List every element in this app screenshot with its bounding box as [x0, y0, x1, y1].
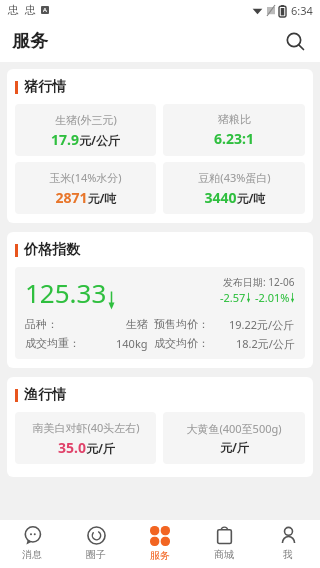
staticText: 成交均重： — [25, 336, 80, 350]
button[interactable]: Search — [280, 26, 310, 56]
staticText: 玉米(14%水分) — [49, 170, 122, 185]
staticText: 140kg — [116, 336, 148, 351]
staticText: 商城 — [214, 548, 234, 561]
button[interactable]: 我 — [256, 520, 320, 568]
staticText: 大黄鱼(400至500g) — [186, 421, 282, 436]
staticText: 成交均价： — [154, 336, 209, 350]
staticText: 6.23:1 — [214, 129, 254, 148]
staticText: 35.0元/斤 — [58, 438, 115, 457]
staticText: 生猪(外三元) — [55, 112, 117, 127]
button[interactable]: 南美白对虾(40头左右) — [15, 412, 156, 464]
staticText: 南美白对虾(40头左右) — [32, 420, 140, 435]
staticText: -2.01% — [255, 290, 290, 305]
button[interactable]: 服务 — [128, 520, 192, 568]
button[interactable]: 豆粕(43%蛋白) — [163, 162, 305, 214]
staticText: A — [43, 6, 47, 14]
staticText: 预售均价： — [154, 317, 209, 331]
staticText: -2.57 — [220, 290, 246, 305]
staticText: 猪行情 — [24, 78, 66, 96]
staticText: 消息 — [22, 548, 42, 561]
staticText: 元/斤 — [220, 439, 249, 455]
staticText: 服务 — [150, 549, 170, 562]
staticText: 服务 — [12, 30, 48, 53]
staticText: 生猪 — [126, 317, 148, 331]
staticText: 125.33 — [25, 275, 107, 310]
button[interactable]: 商城 — [192, 520, 256, 568]
staticText: 19.22元/公斤 — [229, 317, 295, 332]
button[interactable]: 猪粮比 — [163, 104, 305, 156]
staticText: 17.9元/公斤 — [51, 130, 120, 149]
staticText: 忠 — [25, 3, 36, 17]
button[interactable]: 玉米(14%水分) — [15, 162, 156, 214]
staticText: 品种： — [25, 317, 58, 331]
staticText: 发布日期: 12-06 — [223, 275, 295, 289]
staticText: 3440元/吨 — [204, 188, 266, 207]
button[interactable]: 消息 — [0, 520, 64, 568]
button[interactable]: 圈子 — [64, 520, 128, 568]
button[interactable]: 125.33 — [15, 267, 305, 359]
button[interactable]: 生猪(外三元) — [15, 104, 156, 156]
staticText: 忠 — [8, 3, 19, 17]
staticText: 猪粮比 — [218, 112, 251, 126]
staticText: 6:34 — [291, 3, 313, 18]
staticText: 渔行情 — [24, 386, 66, 404]
staticText: 豆粕(43%蛋白) — [198, 170, 271, 185]
staticText: 2871元/吨 — [55, 188, 117, 207]
staticText: 价格指数 — [24, 241, 80, 259]
staticText: 我 — [283, 548, 293, 561]
staticText: 18.2元/公斤 — [236, 336, 295, 351]
button[interactable]: 大黄鱼(400至500g) — [163, 412, 305, 464]
staticText: 圈子 — [86, 548, 106, 561]
